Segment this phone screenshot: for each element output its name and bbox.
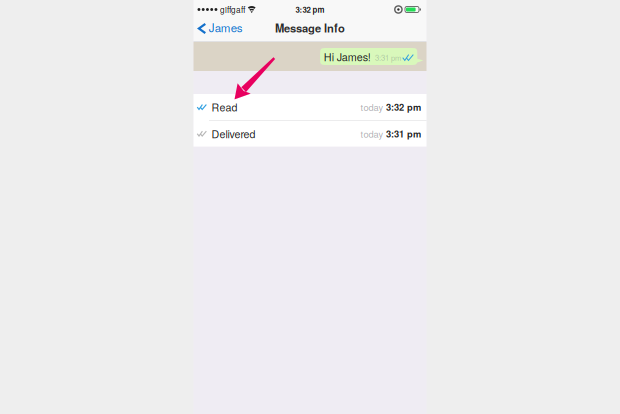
staticText: Message Info bbox=[275, 20, 345, 36]
staticText: James bbox=[209, 19, 243, 35]
staticText: 3:32 pm bbox=[295, 4, 324, 15]
staticText: 3:32 pm bbox=[386, 100, 421, 114]
staticText: Read bbox=[211, 99, 237, 115]
staticText: today bbox=[360, 100, 383, 114]
staticText: 3:31 pm bbox=[375, 52, 401, 63]
staticText: giffgaff bbox=[220, 4, 245, 15]
staticText: Hi James! bbox=[324, 49, 371, 64]
staticText: Delivered bbox=[211, 126, 255, 141]
button[interactable]: Delivered bbox=[193, 121, 426, 147]
staticText: today bbox=[360, 127, 383, 140]
staticText: 3:31 pm bbox=[386, 127, 421, 140]
button[interactable]: Read bbox=[193, 94, 426, 120]
button[interactable]: James bbox=[193, 19, 249, 42]
